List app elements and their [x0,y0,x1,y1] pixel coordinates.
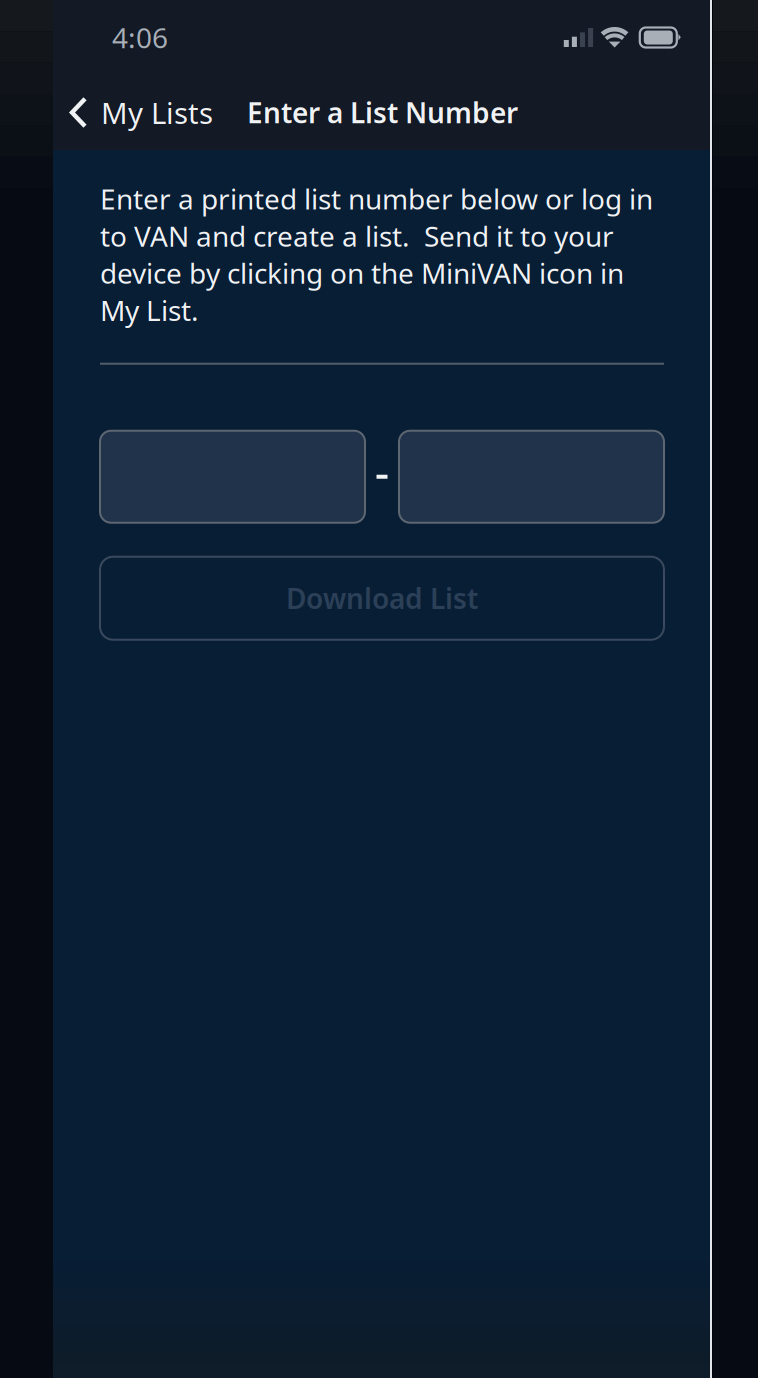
staticText: Download List [286,580,478,617]
button[interactable] [399,431,664,523]
button[interactable]: My Lists [53,75,223,150]
staticText: Enter a printed list number below or log… [100,180,653,329]
button[interactable]: Download List [100,557,664,640]
staticText: 4:06 [112,19,168,56]
staticText: My Lists [101,93,213,132]
staticText: Enter a List Number [247,94,518,131]
button[interactable] [100,431,365,523]
